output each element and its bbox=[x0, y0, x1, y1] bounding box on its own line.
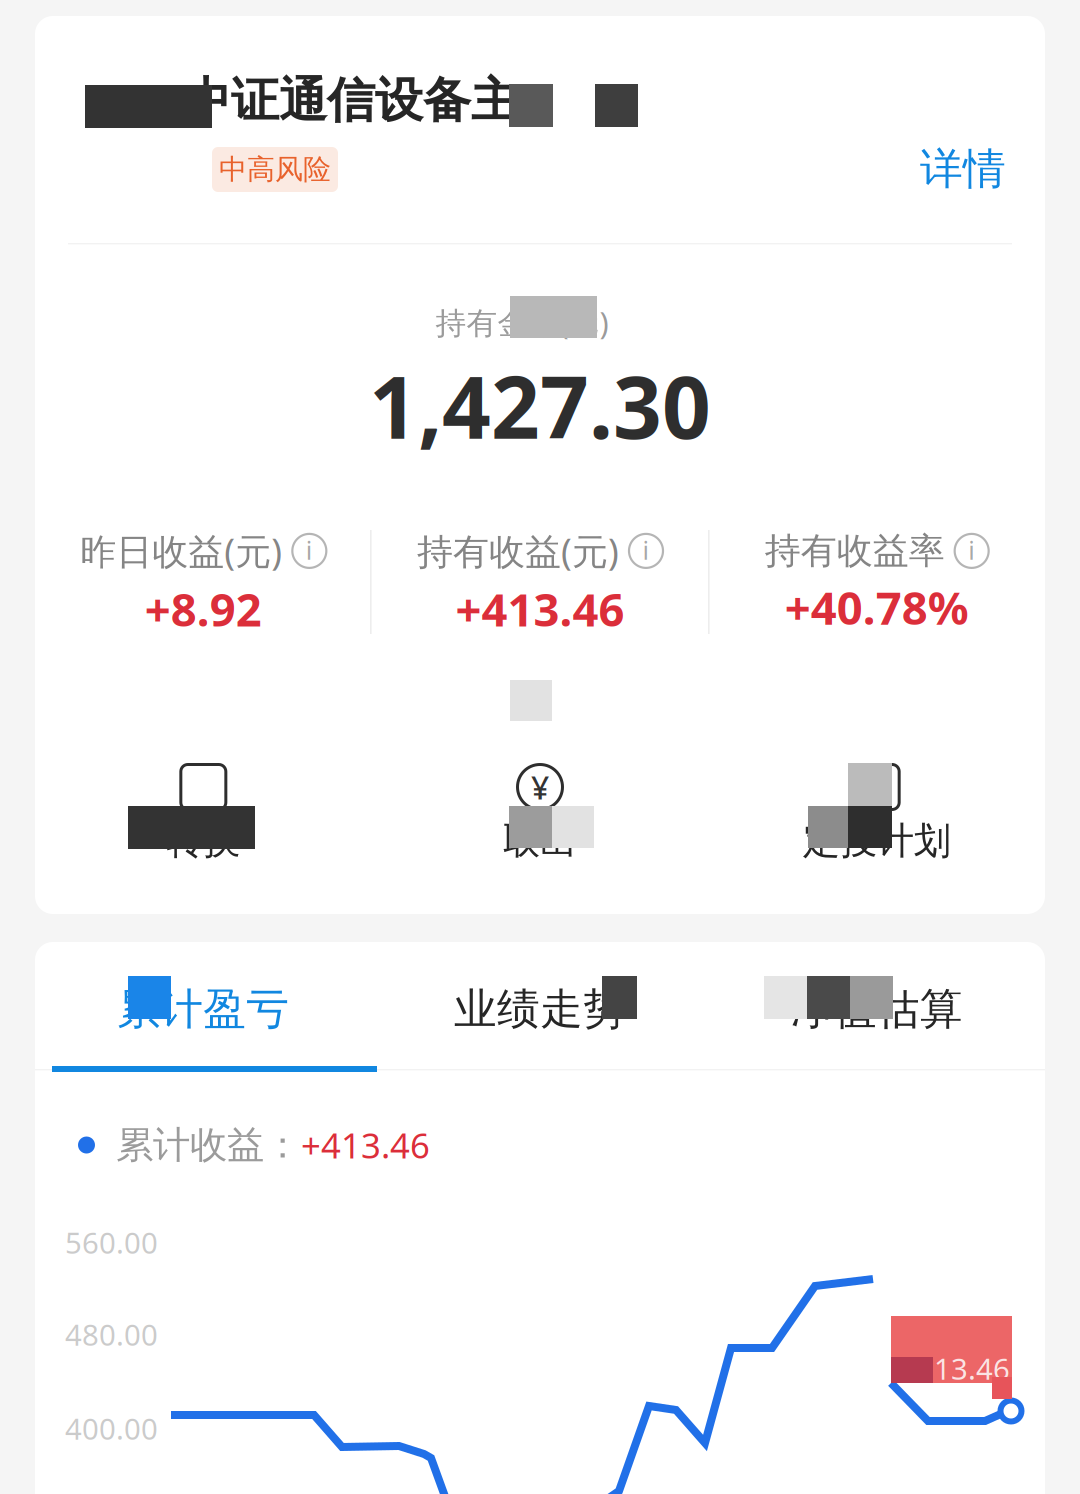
button[interactable]: 详情 bbox=[916, 142, 1010, 196]
staticText: 累计盈亏 bbox=[117, 983, 289, 1035]
staticText: +413.46 bbox=[455, 579, 624, 639]
staticText: 详情 bbox=[920, 143, 1006, 195]
staticText: 定投计划 bbox=[803, 818, 951, 864]
staticText: 13.46 bbox=[934, 1349, 1010, 1388]
staticText: 560.00 bbox=[65, 1223, 158, 1262]
staticText: 转换 bbox=[166, 818, 240, 864]
staticText: 480.00 bbox=[65, 1315, 158, 1354]
staticText: 中高风险 bbox=[219, 152, 331, 187]
staticText: ¥ bbox=[531, 766, 549, 808]
staticText: +8.92 bbox=[145, 579, 262, 639]
staticText: 1,427.30 bbox=[369, 349, 711, 462]
staticText: i bbox=[642, 533, 649, 567]
staticText: i bbox=[968, 533, 975, 567]
staticText: 业绩走势 bbox=[454, 983, 626, 1035]
button[interactable]: 累计盈亏 bbox=[35, 983, 372, 1035]
staticText: 400.00 bbox=[65, 1409, 158, 1448]
staticText: 累计收益： bbox=[116, 1122, 301, 1168]
button[interactable]: 净值估算 bbox=[708, 983, 1045, 1035]
staticText: +40.78% bbox=[785, 577, 969, 637]
staticText: 持有收益(元) bbox=[417, 527, 619, 575]
staticText: +413.46 bbox=[301, 1122, 430, 1168]
button[interactable]: ¥ bbox=[372, 763, 708, 864]
staticText: i bbox=[306, 533, 313, 567]
button[interactable]: 转换 bbox=[35, 763, 372, 864]
staticText: 昨日收益(元) bbox=[80, 527, 282, 575]
staticText: 净值估算 bbox=[791, 983, 963, 1035]
staticText: 取出 bbox=[503, 818, 577, 864]
button[interactable]: 定投计划 bbox=[708, 763, 1045, 864]
staticText: 中证通信设备主 bbox=[183, 71, 519, 130]
staticText: 持有金额(元) bbox=[435, 302, 608, 343]
button[interactable]: 业绩走势 bbox=[372, 983, 708, 1035]
staticText: 持有收益率 bbox=[765, 529, 945, 573]
